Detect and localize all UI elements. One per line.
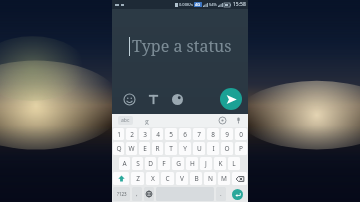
staticText: X bbox=[151, 174, 155, 183]
staticText: C bbox=[165, 174, 170, 183]
staticText: K bbox=[218, 159, 223, 168]
button[interactable]: E bbox=[139, 142, 150, 155]
button[interactable]: . bbox=[216, 187, 226, 201]
staticText: F bbox=[162, 159, 166, 168]
staticText: Z bbox=[136, 174, 140, 183]
button[interactable]: D bbox=[145, 157, 156, 170]
button[interactable]: P bbox=[235, 142, 247, 155]
staticText: 5 bbox=[169, 130, 173, 139]
button[interactable]: X bbox=[146, 172, 159, 185]
staticText: , bbox=[136, 190, 138, 198]
staticText: 9 bbox=[225, 130, 229, 139]
button[interactable]: Shift bbox=[113, 172, 129, 185]
button[interactable]: J bbox=[200, 157, 212, 170]
button[interactable]: Enter bbox=[232, 189, 243, 200]
button[interactable]: Q bbox=[113, 142, 124, 155]
button[interactable]: U bbox=[193, 142, 205, 155]
button[interactable]: S bbox=[132, 157, 143, 170]
button[interactable]: Type a status bbox=[129, 35, 232, 57]
button[interactable]: I bbox=[207, 142, 219, 155]
staticText: ?123 bbox=[117, 191, 127, 197]
staticText: P bbox=[239, 144, 243, 153]
button[interactable]: C bbox=[161, 172, 174, 185]
staticText: U bbox=[197, 144, 202, 153]
staticText: E bbox=[143, 144, 147, 153]
button[interactable]: O bbox=[221, 142, 233, 155]
button[interactable]: T bbox=[165, 142, 177, 155]
button[interactable]: Backspace bbox=[232, 172, 247, 185]
button[interactable]: F bbox=[158, 157, 170, 170]
staticText: A bbox=[122, 159, 127, 168]
button[interactable]: ?123 bbox=[113, 187, 130, 201]
button[interactable]: V bbox=[176, 172, 188, 185]
staticText: D bbox=[148, 159, 153, 168]
button[interactable]: , bbox=[132, 187, 142, 201]
staticText: B bbox=[194, 174, 199, 183]
button[interactable]: L bbox=[228, 157, 240, 170]
staticText: V bbox=[180, 174, 184, 183]
staticText: 7 bbox=[197, 130, 201, 139]
staticText: 8 bbox=[211, 130, 215, 139]
staticText: T bbox=[169, 144, 173, 153]
button[interactable]: K bbox=[214, 157, 226, 170]
staticText: Y bbox=[183, 144, 187, 153]
staticText: 0 bbox=[239, 130, 243, 139]
staticText: O bbox=[224, 144, 230, 153]
button[interactable]: H bbox=[186, 157, 198, 170]
button[interactable]: W bbox=[126, 142, 137, 155]
staticText: L bbox=[232, 159, 236, 168]
button[interactable]: R bbox=[152, 142, 163, 155]
button[interactable]: Send bbox=[220, 88, 242, 110]
button[interactable]: 0 bbox=[235, 128, 247, 140]
staticText: I bbox=[212, 144, 215, 153]
button[interactable]: Z bbox=[131, 172, 144, 185]
button[interactable]: abc bbox=[118, 116, 133, 125]
staticText: abc bbox=[121, 117, 130, 124]
staticText: S bbox=[136, 159, 140, 168]
staticText: 4G bbox=[195, 2, 201, 7]
staticText: N bbox=[208, 174, 213, 183]
button[interactable]: Y bbox=[179, 142, 191, 155]
button[interactable]: 7 bbox=[193, 128, 205, 140]
button[interactable]: 9 bbox=[221, 128, 233, 140]
button[interactable]: 3 bbox=[139, 128, 150, 140]
button[interactable]: Font bbox=[144, 90, 162, 108]
staticText: g bbox=[145, 117, 149, 125]
staticText: 1 bbox=[117, 130, 121, 139]
staticText: 54% bbox=[209, 2, 217, 7]
button[interactable]: Colour bbox=[168, 90, 186, 108]
staticText: 15:58 bbox=[233, 1, 246, 8]
button[interactable]: 8 bbox=[207, 128, 219, 140]
staticText: W bbox=[128, 144, 135, 153]
button[interactable]: Search bbox=[143, 117, 151, 125]
staticText: G bbox=[176, 159, 181, 168]
button[interactable]: B bbox=[190, 172, 202, 185]
button[interactable]: Voice input bbox=[235, 117, 242, 124]
staticText: 0.00K/s bbox=[179, 2, 193, 7]
button[interactable]: Change language bbox=[144, 187, 154, 201]
button[interactable]: 2 bbox=[126, 128, 137, 140]
staticText: J bbox=[205, 159, 207, 168]
button[interactable]: 5 bbox=[165, 128, 177, 140]
button[interactable]: G bbox=[172, 157, 184, 170]
button[interactable]: N bbox=[204, 172, 216, 185]
staticText: R bbox=[155, 144, 160, 153]
button[interactable]: M bbox=[218, 172, 230, 185]
button[interactable]: 6 bbox=[179, 128, 191, 140]
staticText: . bbox=[220, 190, 222, 198]
staticText: 6 bbox=[183, 130, 187, 139]
staticText: Q bbox=[116, 144, 122, 153]
staticText: M bbox=[221, 174, 227, 183]
button[interactable]: Emoji bbox=[120, 90, 138, 108]
staticText: H bbox=[190, 159, 195, 168]
staticText: Type a status bbox=[132, 35, 232, 57]
button[interactable]: 4 bbox=[152, 128, 163, 140]
staticText: 4 bbox=[156, 130, 160, 139]
button[interactable]: 1 bbox=[113, 128, 124, 140]
button[interactable]: A bbox=[119, 157, 130, 170]
button[interactable]: Settings bbox=[219, 117, 226, 124]
staticText: 3 bbox=[143, 130, 147, 139]
staticText: 2 bbox=[130, 130, 134, 139]
